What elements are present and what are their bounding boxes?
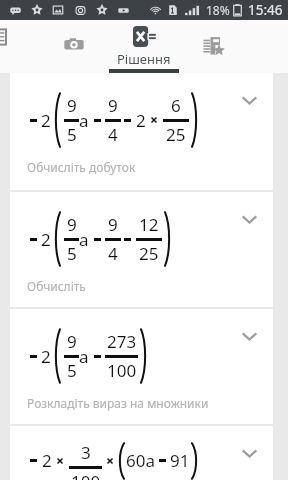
button[interactable]: Розгорнути (241, 447, 258, 464)
button[interactable]: Камера (40, 20, 109, 73)
staticText: Обчисліть (27, 278, 86, 294)
staticText: 5 (67, 242, 77, 265)
staticText: 6 (171, 94, 181, 117)
button[interactable]: Меню (0, 27, 11, 47)
button[interactable]: Розгорнути (241, 330, 258, 347)
staticText: 9 (108, 94, 118, 117)
staticText: 3 (81, 441, 91, 464)
button[interactable]: 2 (10, 192, 273, 307)
staticText: 91 (170, 449, 190, 472)
button[interactable]: 2 (10, 426, 273, 480)
staticText: 2 (41, 345, 51, 368)
staticText: Розкладіть вираз на множники (27, 395, 209, 411)
staticText: a (79, 228, 89, 251)
staticText: 15:46 (248, 1, 283, 19)
staticText: 2 (136, 109, 146, 132)
staticText: 4 (108, 242, 118, 265)
staticText: 25 (166, 123, 186, 146)
staticText: 273 (107, 330, 137, 353)
staticText: 2 (41, 109, 51, 132)
staticText: 2 (41, 228, 51, 251)
button[interactable]: Рішення (109, 20, 179, 73)
staticText: a (79, 109, 89, 132)
button[interactable]: Розгорнути (241, 213, 258, 230)
button[interactable]: Закладки (180, 20, 249, 73)
staticText: 9 (108, 213, 118, 236)
staticText: Рішення (117, 50, 171, 68)
staticText: 5 (67, 359, 77, 382)
staticText: 100 (107, 359, 137, 382)
staticText: 5 (67, 123, 77, 146)
staticText: 12 (139, 213, 159, 236)
staticText: 100 (71, 470, 101, 480)
staticText: a (79, 345, 89, 368)
staticText: 9 (67, 213, 77, 236)
staticText: 9 (67, 330, 77, 353)
button[interactable]: 2 (10, 309, 273, 424)
staticText: 9 (67, 94, 77, 117)
button[interactable]: 2 (10, 73, 273, 190)
staticText: 4 (108, 123, 118, 146)
staticText: 25 (139, 242, 159, 265)
button[interactable]: Розгорнути (241, 94, 258, 111)
staticText: 18% (206, 2, 230, 18)
staticText: 2 (42, 449, 52, 472)
staticText: Обчисліть добуток (27, 159, 136, 175)
staticText: 60a (126, 449, 155, 472)
